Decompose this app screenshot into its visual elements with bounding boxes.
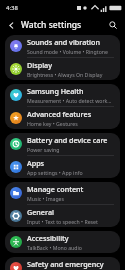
button[interactable]: Sounds and vibration: [5, 35, 120, 57]
staticText: 4:38: [6, 4, 18, 12]
button[interactable]: Safety and emergency: [5, 257, 120, 270]
button[interactable]: Advanced features: [5, 107, 120, 129]
button[interactable]: Manage content: [5, 182, 120, 204]
staticText: General: [27, 207, 54, 217]
staticText: App settings • App info: [27, 169, 83, 176]
staticText: Power saving: [27, 146, 60, 153]
staticText: Sound mode • Volume • Ringtone: [27, 48, 108, 55]
staticText: TalkBack • Mono audio: [27, 244, 82, 251]
staticText: Safety and emergency: [27, 259, 104, 269]
button[interactable]: Display: [5, 58, 120, 80]
button[interactable]: Battery and device care: [5, 133, 120, 155]
staticText: Display: [27, 60, 52, 70]
staticText: Accessibility: [27, 233, 69, 243]
staticText: Samsung Health: [27, 86, 84, 96]
button[interactable]: General: [5, 205, 120, 227]
staticText: Brightness • Always On Display: [27, 71, 103, 78]
button[interactable]: Apps: [5, 156, 120, 178]
button[interactable]: Samsung Health: [5, 84, 120, 106]
staticText: Music • Images: [27, 195, 64, 202]
button[interactable]: Accessibility: [5, 231, 120, 253]
staticText: Home key • Gestures: [27, 120, 78, 127]
staticText: Apps: [27, 158, 45, 168]
staticText: Watch settings: [21, 19, 82, 31]
button[interactable]: Back: [4, 18, 18, 32]
staticText: Manage content: [27, 184, 84, 194]
staticText: Advanced features: [27, 109, 92, 119]
staticText: Battery and device care: [27, 135, 108, 145]
staticText: Measurement • Auto detect workouts: [27, 97, 114, 104]
staticText: Input • Text to speech • Reset: [27, 218, 98, 225]
staticText: Sounds and vibration: [27, 37, 100, 47]
button[interactable]: Search: [106, 18, 120, 32]
